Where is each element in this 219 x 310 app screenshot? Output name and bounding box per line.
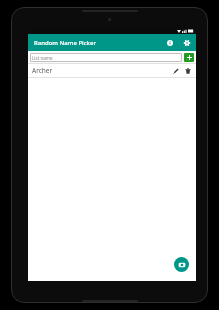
staticText: Archer: [32, 66, 170, 75]
button[interactable]: Pick a random name: [174, 257, 189, 272]
staticText: Random Name Picker: [34, 39, 96, 47]
button[interactable]: Settings: [181, 37, 192, 48]
button[interactable]: List name: [30, 53, 182, 62]
button[interactable]: Delete: [182, 65, 193, 76]
staticText: List name: [32, 55, 53, 61]
button[interactable]: Info: [164, 37, 175, 48]
button[interactable]: Add list: [184, 53, 194, 62]
button[interactable]: Archer: [28, 64, 196, 77]
button[interactable]: Edit: [170, 65, 181, 76]
